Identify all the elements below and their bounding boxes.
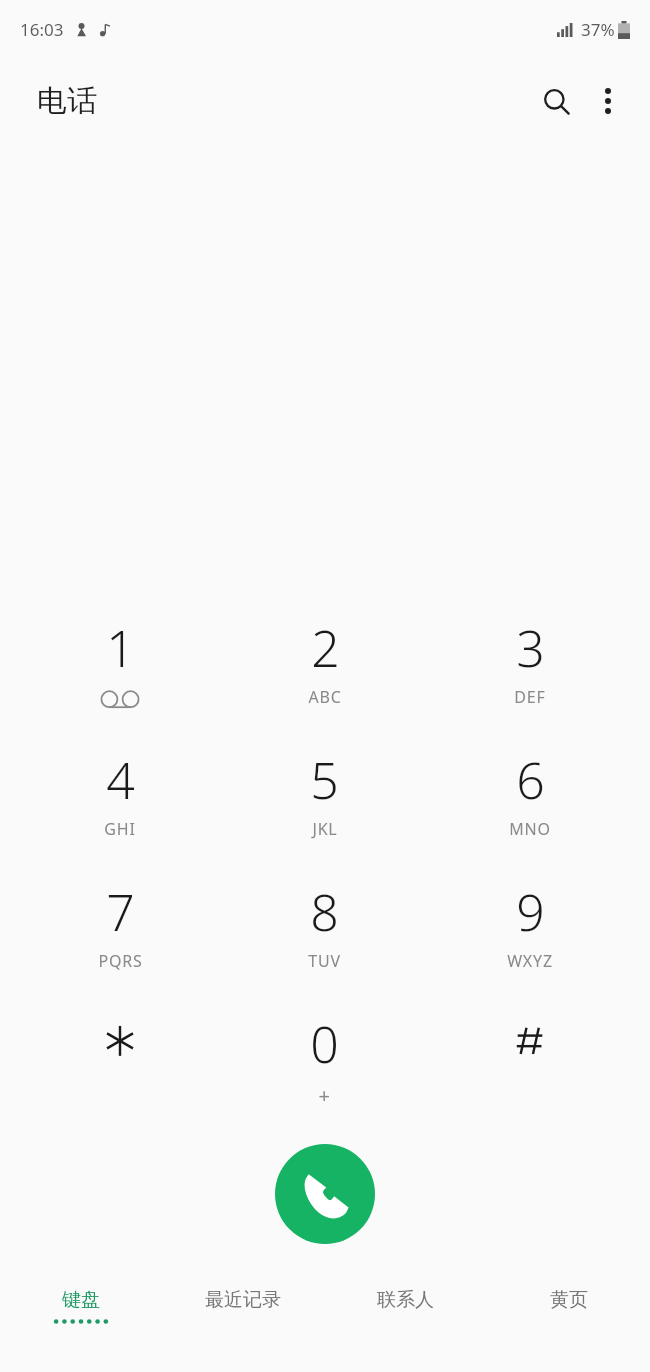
staticText: GHI: [104, 818, 136, 840]
staticText: ABC: [308, 686, 342, 708]
button[interactable]: 6: [427, 740, 632, 872]
button[interactable]: 联系人: [324, 1288, 487, 1346]
staticText: 键盘: [62, 1288, 100, 1312]
staticText: 6: [516, 746, 545, 814]
button[interactable]: 3: [427, 608, 632, 740]
button[interactable]: 黄页: [487, 1288, 650, 1346]
button[interactable]: 7: [18, 872, 222, 1004]
staticText: JKL: [312, 818, 338, 840]
staticText: 8: [310, 878, 339, 946]
staticText: MNO: [509, 818, 551, 840]
staticText: 4: [106, 746, 135, 814]
staticText: 联系人: [377, 1288, 434, 1312]
button[interactable]: [18, 1004, 222, 1122]
staticText: TUV: [308, 950, 341, 972]
button[interactable]: [427, 1004, 632, 1122]
staticText: 3: [516, 614, 545, 682]
staticText: 37%: [581, 18, 615, 41]
button[interactable]: 5: [222, 740, 427, 872]
staticText: 5: [310, 746, 339, 814]
staticText: 0: [310, 1010, 339, 1078]
staticText: 9: [516, 878, 545, 946]
staticText: WXYZ: [507, 950, 553, 972]
staticText: 16:03: [20, 18, 64, 41]
staticText: 最近记录: [205, 1288, 281, 1312]
button[interactable]: 0: [222, 1004, 427, 1122]
button[interactable]: 最近记录: [162, 1288, 324, 1346]
button[interactable]: Search: [530, 75, 582, 127]
staticText: 7: [106, 878, 135, 946]
button[interactable]: 1: [18, 608, 222, 740]
button[interactable]: Call: [275, 1144, 375, 1244]
button[interactable]: 2: [222, 608, 427, 740]
staticText: 黄页: [550, 1288, 588, 1312]
button[interactable]: 4: [18, 740, 222, 872]
staticText: 2: [311, 614, 340, 682]
staticText: DEF: [514, 686, 546, 708]
button[interactable]: 键盘: [0, 1288, 162, 1346]
button[interactable]: 8: [222, 872, 427, 1004]
button[interactable]: 9: [427, 872, 632, 1004]
button[interactable]: More options: [582, 75, 634, 127]
staticText: 1: [106, 614, 135, 682]
staticText: PQRS: [98, 950, 143, 972]
staticText: 电话: [37, 82, 97, 120]
staticText: +: [318, 1082, 331, 1109]
